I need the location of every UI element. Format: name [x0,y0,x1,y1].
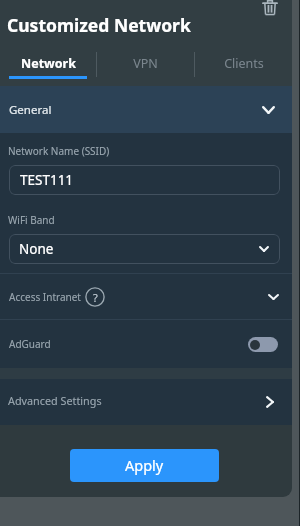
button[interactable]: Access Intranet [0,274,292,319]
button[interactable]: Apply [70,449,219,482]
staticText: TEST111 [20,171,74,189]
staticText: Access Intranet [9,290,81,304]
button[interactable]: None [9,234,280,264]
staticText: Customized Network [7,13,191,37]
button[interactable]: Delete [263,0,277,15]
staticText: AdGuard [9,337,51,351]
staticText: Network Name (SSID) [8,144,110,158]
button[interactable]: Help [85,287,105,307]
staticText: Network [21,55,76,72]
button[interactable]: TEST111 [9,165,280,195]
staticText: Advanced Settings [8,393,102,408]
staticText: None [19,240,54,258]
button[interactable]: AdGuard toggle [248,337,278,352]
staticText: General [9,102,52,118]
button[interactable]: Clients [195,46,292,86]
button[interactable]: General [0,86,292,133]
staticText: Apply [125,455,164,475]
button[interactable]: AdGuard [0,320,292,368]
button[interactable]: Network [0,46,96,86]
staticText: WiFi Band [8,213,55,227]
button[interactable]: Advanced Settings [0,379,292,425]
button[interactable]: VPN [97,46,194,86]
staticText: Clients [224,55,264,72]
staticText: ? [93,290,98,305]
staticText: VPN [133,55,158,72]
